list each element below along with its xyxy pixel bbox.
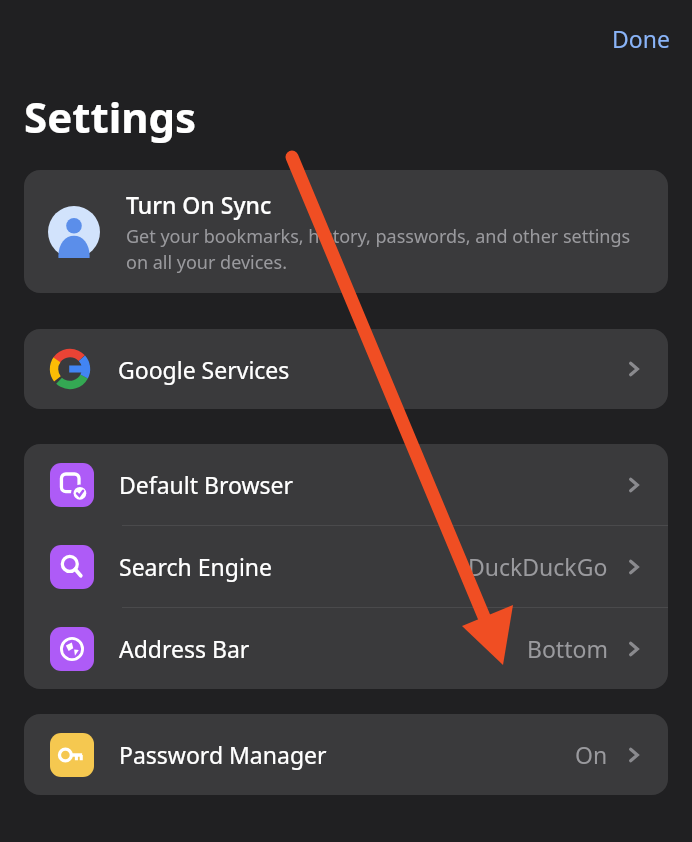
other: Password Manager	[50, 733, 94, 777]
button[interactable]: Search Engine	[24, 526, 668, 607]
staticText: Get your bookmarks, history, passwords, …	[126, 224, 646, 275]
other: Address Bar	[50, 627, 94, 671]
staticText: DuckDuckGo	[468, 551, 608, 582]
staticText: Settings	[24, 88, 197, 145]
staticText: Turn On Sync	[126, 189, 272, 220]
staticText: Default Browser	[119, 469, 294, 500]
staticText: On	[575, 739, 608, 770]
staticText: Bottom	[527, 633, 608, 664]
staticText: Google Services	[118, 354, 290, 385]
staticText: Search Engine	[119, 551, 273, 582]
other: Google	[50, 349, 90, 389]
button[interactable]: Google	[24, 329, 668, 409]
other: Account avatar	[48, 206, 100, 258]
staticText: Address Bar	[119, 633, 250, 664]
other: Search Engine	[50, 545, 94, 589]
button[interactable]: Password Manager	[24, 714, 668, 795]
button[interactable]: Default Browser	[24, 444, 668, 525]
staticText: Password Manager	[119, 739, 327, 770]
button[interactable]: Done	[606, 15, 676, 62]
button[interactable]: Account avatar	[24, 170, 668, 293]
button[interactable]: Address Bar	[24, 608, 668, 689]
staticText: Done	[612, 23, 670, 54]
other: Default Browser	[50, 463, 94, 507]
